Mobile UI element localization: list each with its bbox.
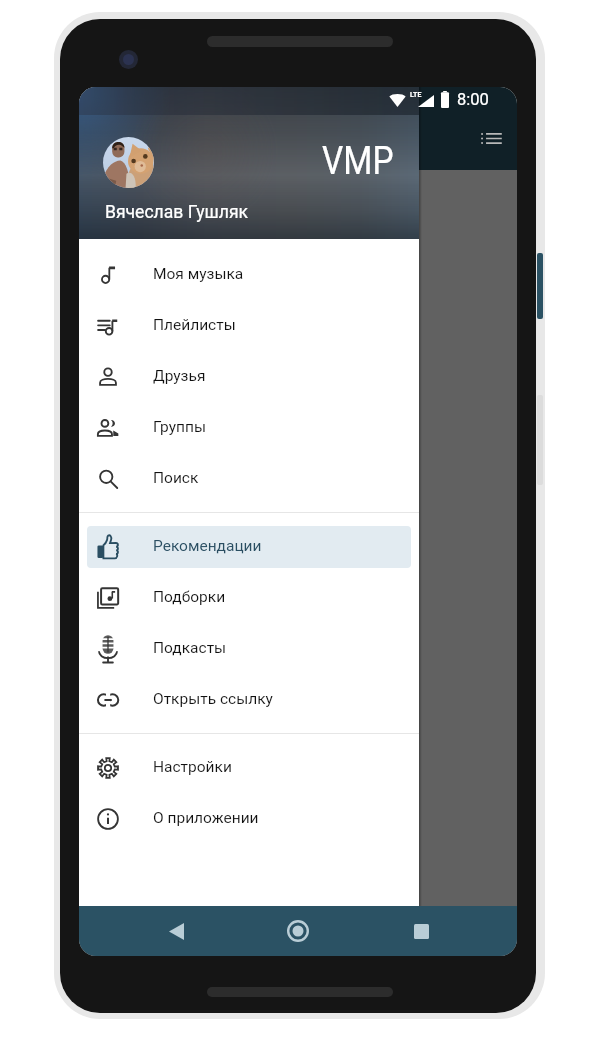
button[interactable]: Playlist: [473, 120, 509, 156]
button[interactable]: Поиск: [87, 458, 411, 500]
button[interactable]: Рекомендации: [87, 526, 411, 568]
staticText: О приложении: [153, 809, 259, 827]
staticText: VMP: [322, 137, 394, 183]
staticText: Подборки: [153, 588, 226, 606]
button[interactable]: Группы: [87, 407, 411, 449]
staticText: Плейлисты: [153, 316, 236, 334]
staticText: Рекомендации: [153, 537, 262, 555]
staticText: Друзья: [153, 367, 206, 385]
button[interactable]: Моя музыка: [87, 254, 411, 296]
staticText: Вячеслав Гушляк: [105, 200, 249, 223]
staticText: Поиск: [153, 469, 199, 487]
button[interactable]: Друзья: [87, 356, 411, 398]
button[interactable]: Подкасты: [87, 628, 411, 670]
button[interactable]: Home: [276, 909, 320, 953]
staticText: Настройки: [153, 758, 232, 776]
button[interactable]: Настройки: [87, 747, 411, 789]
button[interactable]: Открыть ссылку: [87, 679, 411, 721]
staticText: Группы: [153, 418, 206, 436]
staticText: Открыть ссылку: [153, 690, 273, 708]
button[interactable]: О приложении: [87, 798, 411, 840]
button[interactable]: Back: [154, 909, 198, 953]
button[interactable]: Подборки: [87, 577, 411, 619]
staticText: Подкасты: [153, 639, 227, 657]
staticText: Моя музыка: [153, 265, 244, 283]
button[interactable]: Плейлисты: [87, 305, 411, 347]
staticText: LTE: [410, 91, 422, 99]
button[interactable]: Recents: [399, 909, 443, 953]
staticText: 8:00: [457, 90, 489, 109]
